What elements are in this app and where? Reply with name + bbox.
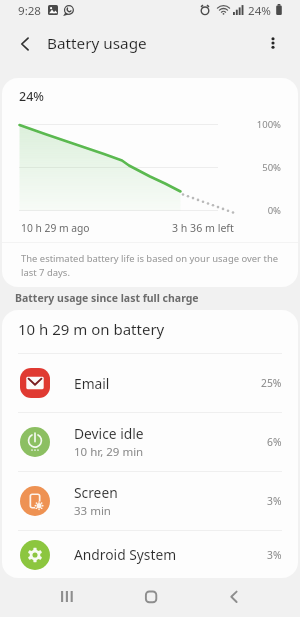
- staticText: The estimated battery life is based on y…: [21, 252, 279, 279]
- staticText: 100%: [221, 118, 281, 131]
- button[interactable]: More options: [259, 29, 287, 57]
- button[interactable]: Recent apps: [25, 578, 109, 617]
- staticText: 10 hr, 29 min: [74, 444, 144, 460]
- button[interactable]: Email: [2, 354, 298, 412]
- staticText: 3%: [267, 548, 282, 562]
- staticText: 50%: [221, 161, 281, 174]
- staticText: 10 h 29 m ago: [21, 221, 90, 235]
- button[interactable]: Device idle: [2, 413, 298, 471]
- staticText: 6%: [267, 435, 282, 449]
- button[interactable]: Android System: [2, 531, 298, 578]
- staticText: 33 min: [74, 503, 111, 519]
- staticText: Device idle: [74, 424, 144, 443]
- staticText: 0%: [221, 204, 281, 217]
- staticText: 10 h 29 m on battery: [18, 319, 165, 339]
- staticText: 24%: [19, 88, 44, 105]
- staticText: 25%: [261, 376, 282, 390]
- button[interactable]: Back: [192, 578, 276, 617]
- button[interactable]: Home: [109, 578, 193, 617]
- button[interactable]: Back: [10, 29, 40, 59]
- button[interactable]: Screen: [2, 472, 298, 530]
- staticText: 3 h 36 m left: [172, 221, 234, 235]
- staticText: Battery usage: [47, 33, 147, 54]
- staticText: 24%: [248, 3, 271, 19]
- staticText: 9:28: [18, 3, 42, 19]
- staticText: Battery usage since last full charge: [15, 291, 199, 305]
- staticText: Email: [74, 374, 110, 393]
- staticText: Screen: [74, 483, 118, 502]
- staticText: 3%: [267, 494, 282, 508]
- staticText: Android System: [74, 545, 177, 564]
